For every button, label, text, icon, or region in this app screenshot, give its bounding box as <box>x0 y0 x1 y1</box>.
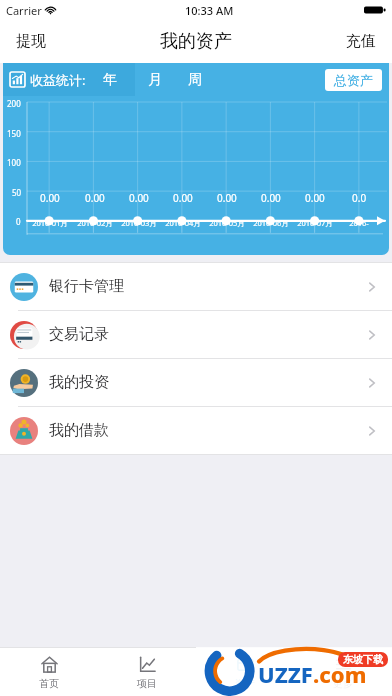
staticText: 0.00 <box>173 191 193 205</box>
staticText: 10:33 AM <box>185 3 234 18</box>
button[interactable]: 交易记录 <box>0 311 392 358</box>
staticText: 0 <box>16 216 21 227</box>
button[interactable]: 首页 <box>0 648 98 696</box>
staticText: 年 <box>103 71 117 89</box>
staticText: 充值 <box>346 32 376 51</box>
staticText: 0.00 <box>40 191 60 205</box>
button[interactable]: 项目 <box>98 648 196 696</box>
button[interactable]: 提现 <box>0 24 62 59</box>
staticText: 收益统计: <box>30 71 86 89</box>
staticText: 0.00 <box>305 191 325 205</box>
button[interactable]: 年 <box>93 63 127 96</box>
staticText: 银行卡管理 <box>49 277 124 296</box>
staticText: Carrier <box>6 3 42 18</box>
staticText: 项目 <box>137 677 157 690</box>
staticText: 资产 <box>235 677 255 690</box>
staticText: 2016-03月 <box>121 218 157 228</box>
staticText: 我的投资 <box>49 373 109 392</box>
staticText: UZZF <box>258 659 313 689</box>
staticText: 东坡下载 <box>343 653 383 666</box>
button[interactable]: 周 <box>175 63 215 96</box>
staticText: 交易记录 <box>49 325 109 344</box>
staticText: 2016-07月 <box>297 218 333 228</box>
staticText: 200 <box>7 98 21 109</box>
button[interactable]: 更多 <box>294 648 392 696</box>
button[interactable]: 月 <box>135 63 175 96</box>
staticText: 2016-01月 <box>32 218 68 228</box>
staticText: 0.0 <box>352 191 367 205</box>
staticText: 2016-06月 <box>253 218 289 228</box>
button[interactable]: 我的投资 <box>0 359 392 406</box>
staticText: 100 <box>7 157 21 168</box>
button[interactable]: 我的借款 <box>0 407 392 454</box>
staticText: 更多 <box>333 677 353 690</box>
staticText: 提现 <box>16 32 46 51</box>
button[interactable]: 充值 <box>330 24 392 59</box>
button[interactable]: 银行卡管理 <box>0 263 392 310</box>
staticText: 2016-04月 <box>165 218 201 228</box>
staticText: 2016-02月 <box>77 218 113 228</box>
staticText: 150 <box>7 128 21 139</box>
staticText: 月 <box>148 71 162 89</box>
button[interactable]: 资产 <box>196 648 294 696</box>
staticText: 2016-05月 <box>209 218 245 228</box>
staticText: 首页 <box>39 677 59 690</box>
staticText: 0.00 <box>85 191 105 205</box>
staticText: 0.00 <box>261 191 281 205</box>
staticText: 周 <box>188 71 202 89</box>
staticText: 总资产 <box>334 72 373 88</box>
staticText: 50 <box>12 187 22 198</box>
button[interactable]: 总资产 <box>325 69 382 91</box>
staticText: 我的资产 <box>160 30 232 53</box>
staticText: 2016- <box>349 218 369 228</box>
staticText: 0.00 <box>217 191 237 205</box>
staticText: .com <box>313 659 367 689</box>
staticText: 我的借款 <box>49 421 109 440</box>
staticText: 0.00 <box>129 191 149 205</box>
